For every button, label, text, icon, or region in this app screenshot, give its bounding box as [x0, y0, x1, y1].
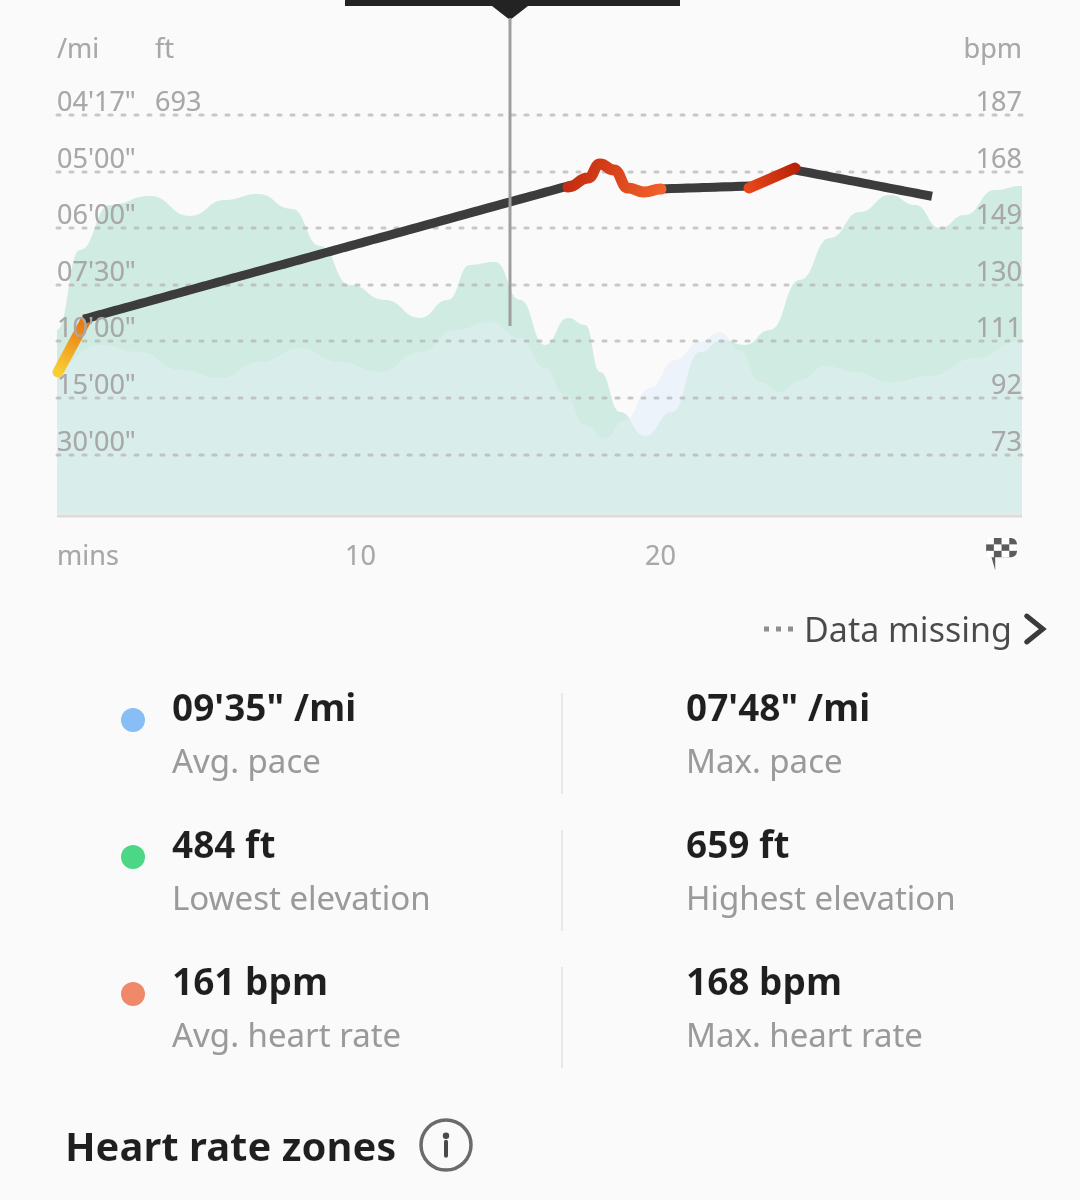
staticText: 168 bpm: [686, 955, 842, 1005]
button[interactable]: 07'48" /mi: [562, 675, 1080, 812]
staticText: Avg. pace: [172, 738, 321, 783]
staticText: Avg. heart rate: [172, 1012, 402, 1057]
staticText: 693: [155, 82, 202, 119]
staticText: 09'35" /mi: [172, 681, 357, 731]
button[interactable]: 161 bpm: [0, 949, 562, 1086]
staticText: ft: [155, 29, 175, 66]
staticText: 30'00": [57, 422, 136, 459]
staticText: Highest elevation: [686, 875, 956, 920]
staticText: Max. heart rate: [686, 1012, 923, 1057]
staticText: 149: [0, 195, 1022, 232]
button[interactable]: Finish: [980, 530, 1024, 574]
staticText: 187: [0, 82, 1022, 119]
staticText: 10: [345, 536, 376, 573]
staticText: 15'00": [57, 365, 136, 402]
staticText: 07'30": [57, 252, 136, 289]
staticText: 10'00": [57, 308, 136, 345]
button[interactable]: Info about heart rate zones: [419, 1118, 473, 1172]
staticText: 05'00": [57, 139, 136, 176]
button[interactable]: 484 ft: [0, 812, 562, 949]
button[interactable]: Data missing: [756, 598, 1054, 660]
staticText: 20: [645, 536, 676, 573]
staticText: 07'48" /mi: [686, 681, 871, 731]
staticText: 111: [0, 308, 1022, 345]
staticText: Data missing: [804, 606, 1012, 652]
staticText: 168: [0, 139, 1022, 176]
staticText: 73: [0, 422, 1022, 459]
staticText: Heart rate zones: [65, 1118, 397, 1172]
staticText: /mi: [57, 29, 100, 66]
staticText: Lowest elevation: [172, 875, 431, 920]
staticText: 659 ft: [686, 818, 790, 868]
staticText: 484 ft: [172, 818, 276, 868]
button[interactable]: 168 bpm: [562, 949, 1080, 1086]
staticText: 04'17": [57, 82, 136, 119]
staticText: bpm: [0, 29, 1022, 66]
button[interactable]: 09'35" /mi: [0, 675, 562, 812]
staticText: mins: [57, 536, 119, 573]
staticText: 130: [0, 252, 1022, 289]
staticText: Max. pace: [686, 738, 843, 783]
staticText: 161 bpm: [172, 955, 328, 1005]
button[interactable]: 659 ft: [562, 812, 1080, 949]
staticText: 06'00": [57, 195, 136, 232]
staticText: 92: [0, 365, 1022, 402]
